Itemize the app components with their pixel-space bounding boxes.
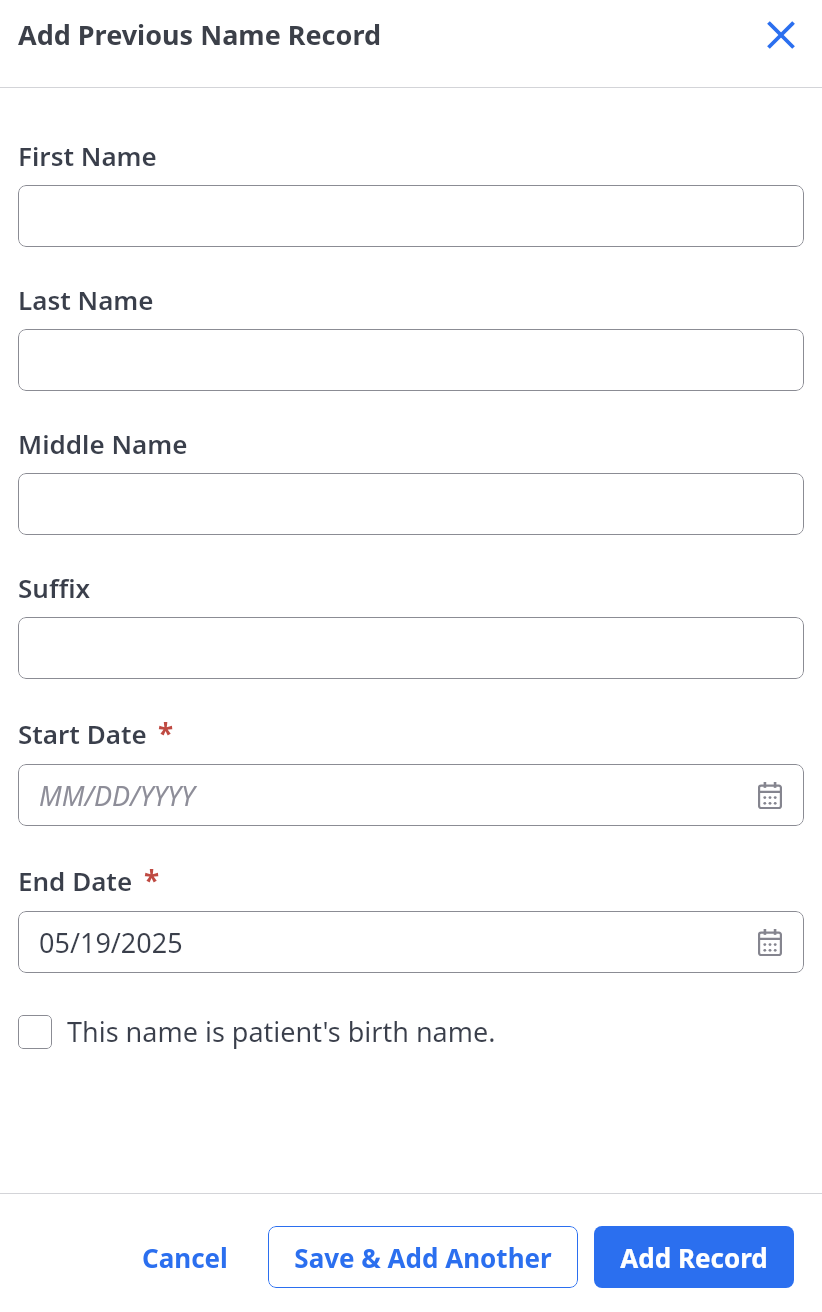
button[interactable] (18, 473, 804, 535)
staticText: Add Previous Name Record (18, 16, 382, 53)
staticText: MM/DD/YYYY (39, 777, 195, 814)
staticText: Cancel (142, 1240, 228, 1275)
button[interactable] (18, 185, 804, 247)
staticText: End Date (18, 863, 133, 898)
staticText: Middle Name (18, 426, 188, 461)
staticText: Suffix (18, 570, 91, 605)
staticText: Last Name (18, 282, 154, 317)
staticText: 05/19/2025 (39, 924, 183, 961)
staticText: * (158, 714, 174, 752)
button[interactable]: Cancel (124, 1226, 246, 1288)
staticText: This name is patient's birth name. (67, 1013, 496, 1050)
button[interactable] (18, 329, 804, 391)
staticText: Save & Add Another (294, 1240, 552, 1275)
staticText: Add Record (620, 1240, 768, 1275)
button[interactable] (18, 617, 804, 679)
button[interactable]: Save & Add Another (268, 1226, 578, 1288)
staticText: Start Date (18, 716, 147, 751)
other: Open calendar (756, 781, 784, 809)
button[interactable]: MM/DD/YYYY (18, 764, 804, 826)
button[interactable]: This name is patient's birth name. (18, 1011, 496, 1052)
staticText: * (144, 861, 160, 899)
staticText: First Name (18, 138, 157, 173)
button[interactable]: Add Record (594, 1226, 794, 1288)
button[interactable]: Close (757, 11, 805, 59)
other: Open calendar (756, 928, 784, 956)
button[interactable]: 05/19/2025 (18, 911, 804, 973)
